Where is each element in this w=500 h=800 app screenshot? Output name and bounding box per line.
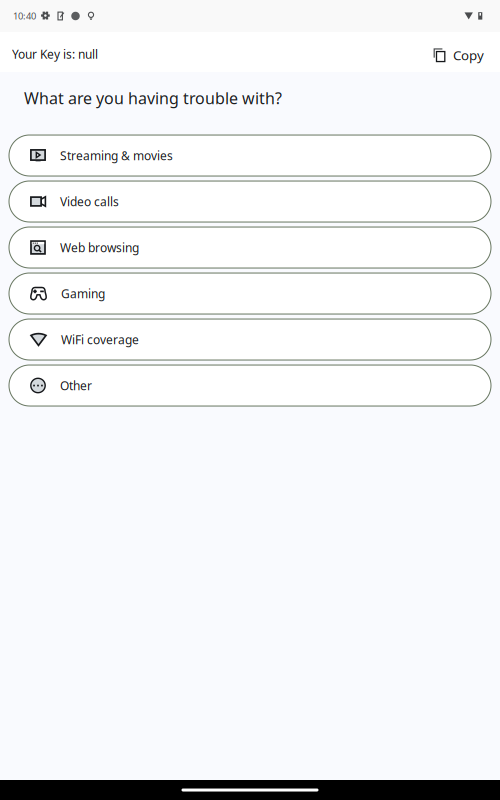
button[interactable]: Copy bbox=[433, 34, 488, 70]
button[interactable]: Streaming & movies bbox=[9, 135, 491, 176]
staticText: 10:40 bbox=[13, 10, 36, 22]
staticText: Copy bbox=[453, 46, 484, 64]
button[interactable]: Gaming bbox=[9, 273, 491, 314]
button[interactable]: WiFi coverage bbox=[9, 319, 491, 360]
staticText: Your Key is: null bbox=[12, 46, 98, 62]
staticText: Streaming & movies bbox=[60, 147, 173, 163]
button[interactable]: Other bbox=[9, 365, 491, 406]
staticText: WiFi coverage bbox=[61, 331, 139, 347]
staticText: Other bbox=[60, 377, 92, 393]
staticText: Video calls bbox=[60, 193, 119, 209]
button[interactable]: Video calls bbox=[9, 181, 491, 222]
staticText: Gaming bbox=[61, 285, 105, 301]
button[interactable]: Web browsing bbox=[9, 227, 491, 268]
staticText: What are you having trouble with? bbox=[24, 87, 282, 109]
staticText: Web browsing bbox=[60, 239, 139, 255]
